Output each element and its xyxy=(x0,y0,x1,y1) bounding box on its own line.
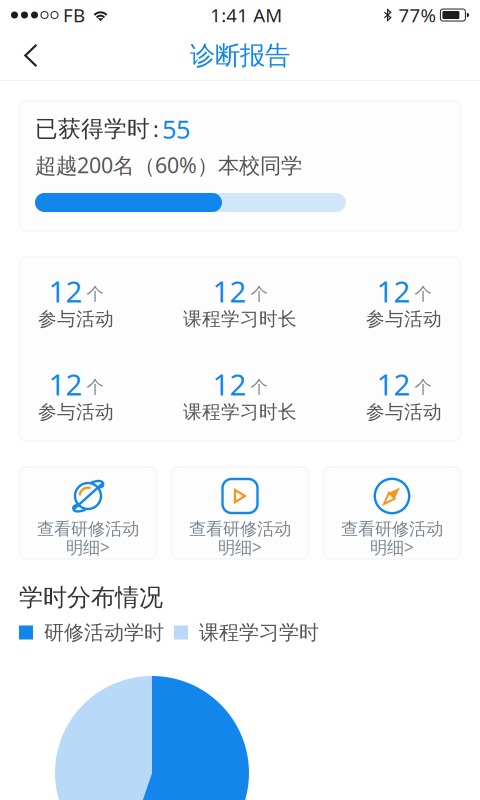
staticText: 12 xyxy=(376,271,410,310)
staticText: 12 xyxy=(48,364,82,403)
staticText: 查看研修活动 xyxy=(37,518,139,540)
staticText: 77% xyxy=(398,3,436,27)
staticText: 研修活动学时 xyxy=(44,620,164,645)
staticText: 查看研修活动 xyxy=(341,518,443,540)
staticText: 明细> xyxy=(370,535,414,558)
staticText: 个 xyxy=(414,376,431,398)
button[interactable]: 查看研修活动 xyxy=(171,467,309,559)
staticText: 课程学习时长 xyxy=(183,400,297,423)
staticText: 参与活动 xyxy=(38,400,114,423)
staticText: 个 xyxy=(414,283,431,305)
staticText: 诊断报告 xyxy=(190,40,290,71)
button[interactable]: 返回 xyxy=(0,29,56,81)
staticText: 参与活动 xyxy=(366,400,442,423)
staticText: 12 xyxy=(212,271,246,310)
staticText: 个 xyxy=(86,283,103,305)
staticText: 个 xyxy=(250,283,267,305)
staticText: 课程学习时长 xyxy=(183,307,297,330)
staticText: : xyxy=(153,115,159,143)
staticText: 已获得学时 xyxy=(35,115,150,143)
staticText: 查看研修活动 xyxy=(189,518,291,540)
staticText: 学时分布情况 xyxy=(19,583,163,612)
button[interactable]: 查看研修活动 xyxy=(19,467,157,559)
staticText: 明细> xyxy=(66,535,110,558)
staticText: 课程学习学时 xyxy=(199,620,319,645)
staticText: 12 xyxy=(376,364,410,403)
staticText: 55 xyxy=(162,112,190,146)
staticText: 参与活动 xyxy=(38,307,114,330)
staticText: 明细> xyxy=(218,535,262,558)
staticText: 个 xyxy=(86,376,103,398)
staticText: 12 xyxy=(48,271,82,310)
staticText: 个 xyxy=(250,376,267,398)
staticText: 超越200名（60%）本校同学 xyxy=(35,151,302,179)
button[interactable]: 查看研修活动 xyxy=(323,467,461,559)
staticText: 12 xyxy=(212,364,246,403)
staticText: FB xyxy=(58,3,85,27)
staticText: 参与活动 xyxy=(366,307,442,330)
staticText: 1:41 AM xyxy=(210,3,282,27)
